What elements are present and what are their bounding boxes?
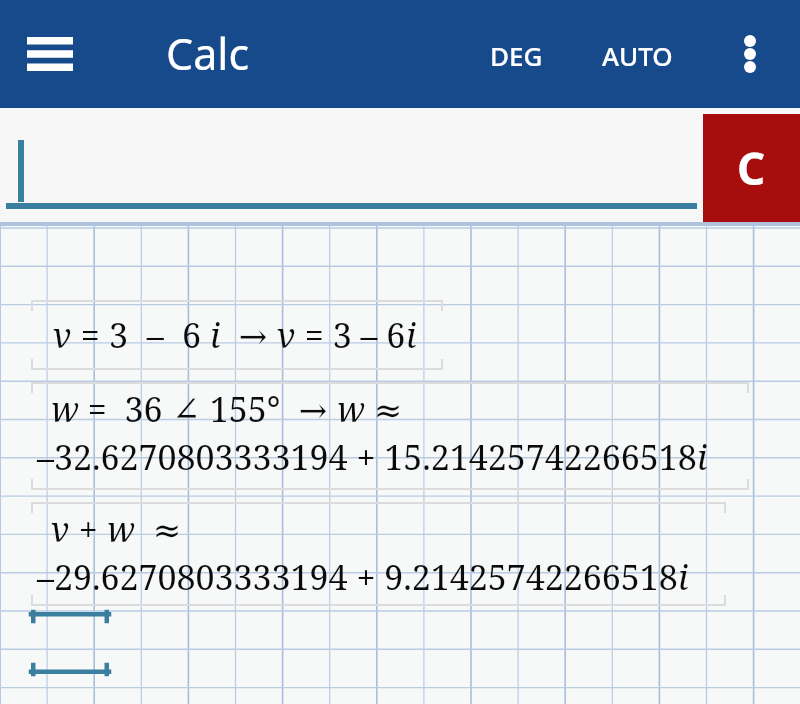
button[interactable]: v — [31, 502, 726, 606]
button[interactable]: DEG — [482, 30, 551, 81]
button[interactable]: w — [31, 382, 749, 490]
staticText: i — [678, 554, 689, 600]
button[interactable]: AUTO — [594, 30, 681, 81]
staticText: i — [697, 434, 708, 480]
staticText: v — [53, 312, 72, 358]
button[interactable]: Calc — [160, 20, 256, 87]
staticText: 6 — [182, 312, 210, 358]
staticText: → — [281, 386, 337, 432]
staticText: → — [221, 312, 277, 358]
button[interactable]: C — [703, 114, 800, 222]
button[interactable]: More options — [722, 22, 778, 86]
button[interactable]: v — [31, 300, 443, 370]
staticText: = 3 – 6 — [296, 312, 406, 358]
staticText: DEG — [490, 38, 543, 73]
staticText: –32.6270803333194 + 15.21425742266518 — [37, 434, 697, 480]
staticText: Calc — [166, 24, 250, 83]
staticText: – — [129, 312, 182, 358]
staticText: AUTO — [602, 38, 673, 73]
staticText: i — [210, 312, 221, 358]
staticText: v — [277, 312, 296, 358]
staticText: + — [70, 506, 107, 552]
staticText: = 36 — [79, 386, 172, 432]
staticText: ≈ — [365, 386, 403, 432]
staticText: w — [337, 386, 365, 432]
button[interactable]: Menu — [18, 22, 82, 86]
staticText: w — [107, 506, 135, 552]
staticText: w — [51, 386, 79, 432]
staticText: ∠ — [172, 389, 201, 429]
staticText: v — [51, 506, 70, 552]
staticText: –29.6270803333194 + 9.21425742266518 — [37, 554, 678, 600]
staticText: C — [737, 138, 766, 198]
staticText: 3 — [109, 312, 129, 358]
button[interactable] — [31, 612, 109, 674]
staticText: 155° — [201, 386, 281, 432]
staticText: i — [406, 312, 417, 358]
staticText: ≈ — [135, 506, 182, 552]
staticText: = — [72, 312, 109, 358]
